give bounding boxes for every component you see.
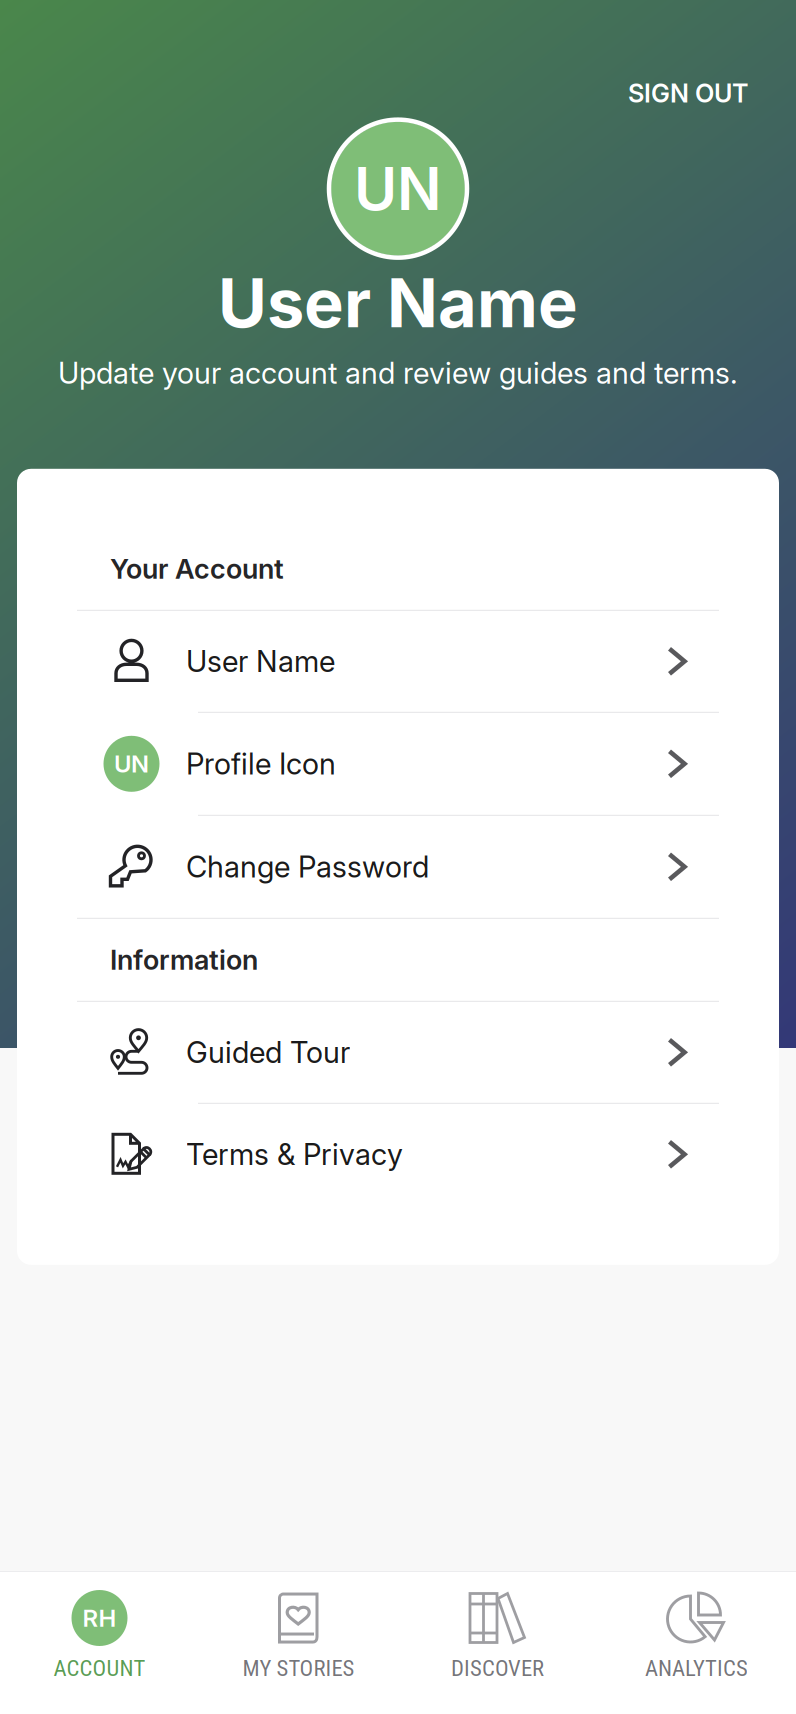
staticText: User Name: [218, 263, 578, 343]
button[interactable]: ANALYTICS: [597, 1572, 796, 1714]
staticText: SIGN OUT: [628, 78, 748, 109]
button[interactable]: Terms & Privacy: [77, 1104, 719, 1205]
staticText: User Name: [186, 644, 335, 679]
staticText: Information: [110, 943, 258, 976]
staticText: DISCOVER: [451, 1655, 544, 1682]
staticText: Your Account: [110, 552, 284, 585]
staticText: Update your account and review guides an…: [58, 355, 738, 391]
button[interactable]: DISCOVER: [398, 1572, 597, 1714]
staticText: Profile Icon: [186, 746, 336, 782]
button[interactable]: Change Password: [77, 816, 719, 918]
staticText: RH: [82, 1603, 116, 1632]
button[interactable]: MY STORIES: [199, 1572, 398, 1714]
staticText: ACCOUNT: [53, 1655, 145, 1682]
staticText: MY STORIES: [242, 1655, 354, 1682]
button[interactable]: Guided Tour: [77, 1002, 719, 1103]
staticText: Change Password: [186, 849, 429, 885]
staticText: ANALYTICS: [645, 1655, 748, 1682]
button[interactable]: User Name: [77, 611, 719, 712]
button[interactable]: UN: [77, 713, 719, 815]
button[interactable]: SIGN OUT: [620, 70, 756, 117]
button[interactable]: RH: [0, 1572, 199, 1714]
staticText: UN: [114, 749, 149, 778]
staticText: Guided Tour: [186, 1035, 350, 1070]
staticText: Terms & Privacy: [186, 1137, 403, 1172]
staticText: UN: [354, 153, 442, 224]
